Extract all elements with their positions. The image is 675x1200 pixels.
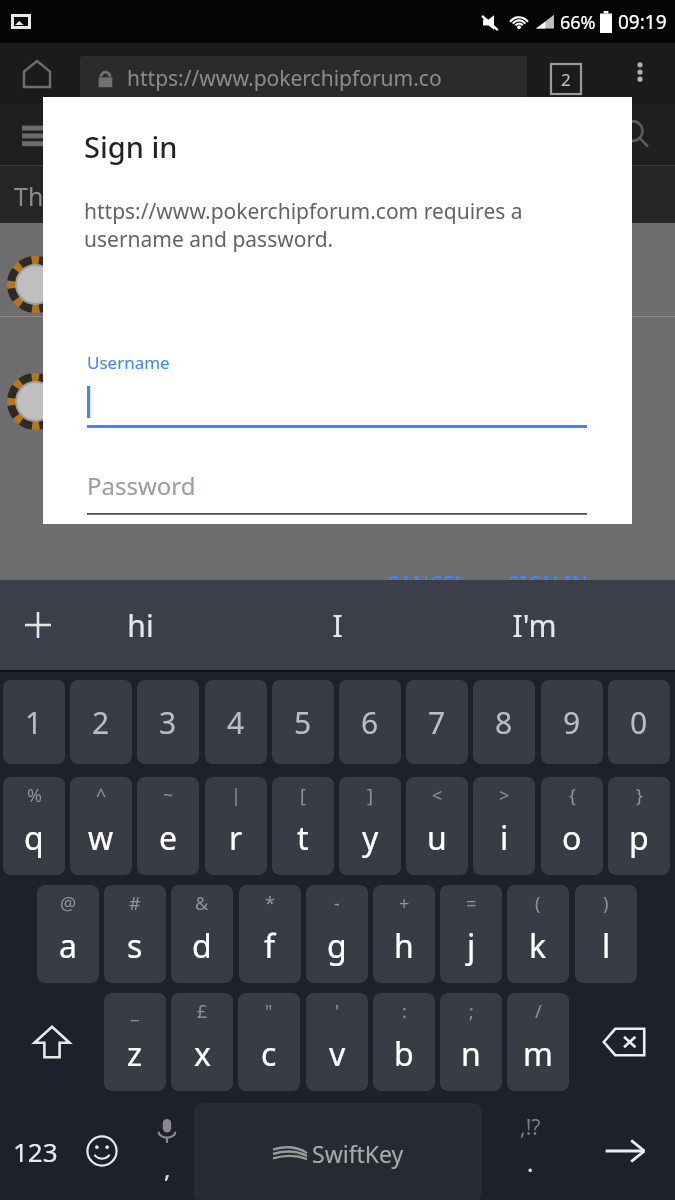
button[interactable]: ,!?	[490, 1101, 570, 1200]
button[interactable]: }	[608, 777, 670, 875]
button[interactable]: Add	[8, 595, 68, 655]
staticText: m	[523, 1032, 553, 1076]
button[interactable]: '	[306, 993, 368, 1091]
button[interactable]: I	[282, 580, 392, 670]
staticText: 123	[13, 1134, 58, 1169]
staticText: |	[231, 783, 241, 808]
button[interactable]: Emoji	[72, 1101, 132, 1200]
button[interactable]: CANCEL	[374, 560, 478, 609]
button[interactable]: 8	[473, 680, 535, 764]
staticText: .	[527, 1146, 534, 1179]
staticText: [	[300, 783, 306, 808]
staticText: Username	[87, 351, 170, 374]
button[interactable]: Enter	[580, 1101, 670, 1200]
button[interactable]: 0	[608, 680, 670, 764]
button[interactable]: I'm	[479, 580, 589, 670]
button[interactable]: _	[104, 993, 166, 1091]
button[interactable]: 1	[3, 680, 65, 764]
button[interactable]: Shift	[8, 993, 96, 1091]
staticText: ,!?	[520, 1113, 541, 1142]
staticText: £	[197, 999, 208, 1024]
button[interactable]: )	[575, 885, 637, 983]
button[interactable]: /	[507, 993, 569, 1091]
button[interactable]: &	[171, 885, 233, 983]
button[interactable]: SIGN IN	[496, 560, 600, 609]
button[interactable]: 6	[339, 680, 401, 764]
button[interactable]: <	[406, 777, 468, 875]
button[interactable]: ;	[440, 993, 502, 1091]
button[interactable]: Voice input	[140, 1101, 194, 1200]
button[interactable]: :	[373, 993, 435, 1091]
staticText: r	[229, 816, 243, 860]
staticText: /	[535, 999, 542, 1024]
staticText: =	[466, 891, 477, 916]
button[interactable]: hi	[85, 580, 195, 670]
staticText: '	[335, 999, 340, 1024]
button[interactable]: Backspace	[578, 993, 670, 1091]
button[interactable]: 2	[70, 680, 132, 764]
button[interactable]: @	[37, 885, 99, 983]
button[interactable]: {	[541, 777, 603, 875]
staticText: https://www.pokerchipforum.co	[127, 64, 442, 93]
staticText: Th	[14, 179, 44, 213]
staticText: :	[402, 999, 407, 1024]
button[interactable]: 123	[2, 1101, 68, 1200]
staticText: k	[529, 924, 547, 968]
staticText: b	[394, 1032, 414, 1076]
staticText: o	[562, 816, 582, 860]
staticText: i	[500, 816, 509, 860]
staticText: 09:19	[618, 9, 667, 35]
staticText: (	[535, 891, 541, 916]
staticText: ^	[96, 783, 107, 808]
staticText: 2	[561, 68, 571, 91]
staticText: I	[332, 605, 343, 646]
button[interactable]	[87, 380, 587, 428]
button[interactable]: *	[239, 885, 301, 983]
staticText: CANCEL	[386, 570, 466, 599]
button[interactable]: >	[473, 777, 535, 875]
button[interactable]: ~	[137, 777, 199, 875]
staticText: 66%	[560, 10, 596, 35]
staticText: <	[432, 783, 443, 808]
staticText: %	[27, 783, 42, 808]
staticText: }	[636, 783, 643, 808]
button[interactable]: |	[205, 777, 267, 875]
button[interactable]: =	[440, 885, 502, 983]
button[interactable]: 3	[137, 680, 199, 764]
button[interactable]: "	[238, 993, 300, 1091]
staticText: q	[24, 816, 44, 860]
staticText: 9	[563, 702, 581, 743]
button[interactable]: 7	[406, 680, 468, 764]
button[interactable]: https://www.pokerchipforum.co	[80, 56, 527, 100]
staticText: #	[129, 891, 141, 916]
staticText: n	[461, 1032, 481, 1076]
button[interactable]: Tabs	[548, 61, 584, 97]
button[interactable]: 9	[541, 680, 603, 764]
staticText: g	[327, 924, 347, 968]
button[interactable]: (	[507, 885, 569, 983]
staticText: )	[603, 891, 609, 916]
button[interactable]: Password	[87, 467, 587, 515]
staticText: >	[499, 783, 510, 808]
button[interactable]: [	[272, 777, 334, 875]
staticText: +	[399, 891, 410, 916]
button[interactable]: Space	[194, 1103, 482, 1200]
staticText: 3	[159, 702, 177, 743]
staticText: ]	[367, 783, 373, 808]
button[interactable]: 5	[272, 680, 334, 764]
button[interactable]: £	[171, 993, 233, 1091]
staticText: 5	[294, 702, 312, 743]
button[interactable]: ]	[339, 777, 401, 875]
button[interactable]: #	[104, 885, 166, 983]
button[interactable]: 4	[205, 680, 267, 764]
staticText: p	[629, 816, 649, 860]
button[interactable]: More options	[625, 57, 655, 87]
button[interactable]: +	[373, 885, 435, 983]
staticText: SwiftKey	[312, 1138, 404, 1169]
button[interactable]: -	[306, 885, 368, 983]
button[interactable]: %	[3, 777, 65, 875]
button[interactable]: ^	[70, 777, 132, 875]
